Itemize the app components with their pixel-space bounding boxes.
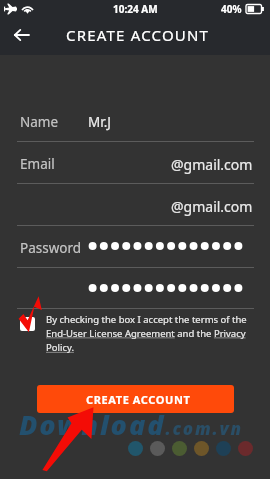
button[interactable]: Theme colour 1 <box>128 441 143 456</box>
button[interactable]: Theme colour 6 <box>238 441 253 456</box>
button[interactable]: Theme colour 5 <box>216 441 231 456</box>
staticText: Download.com.vn <box>19 406 243 443</box>
staticText: Password <box>20 239 82 257</box>
staticText: CREATE ACCOUNT <box>86 392 191 407</box>
button[interactable]: @gmail.com <box>0 183 270 225</box>
staticText: 10:24 AM <box>113 2 158 16</box>
button[interactable]: Name <box>0 99 270 141</box>
staticText: By checking the box I accept the terms o… <box>46 313 254 354</box>
button[interactable]: Password <box>0 225 270 267</box>
button[interactable]: Theme colour 2 <box>150 441 165 456</box>
staticText: 40% <box>221 2 242 16</box>
button[interactable]: Theme colour 3 <box>172 441 187 456</box>
button[interactable] <box>0 267 270 308</box>
button[interactable]: Theme colour 4 <box>194 441 209 456</box>
staticText: CREATE ACCOUNT <box>66 25 210 45</box>
button[interactable]: CREATE ACCOUNT <box>37 385 234 413</box>
staticText: Email <box>20 155 55 173</box>
button[interactable]: Email <box>0 141 270 183</box>
staticText: Mr.J <box>88 113 111 131</box>
staticText: @gmail.com <box>171 155 253 174</box>
staticText: Name <box>20 113 59 131</box>
button[interactable]: By checking the box I accept the terms o… <box>0 313 270 367</box>
button[interactable]: Back <box>6 20 36 50</box>
staticText: @gmail.com <box>171 197 253 216</box>
